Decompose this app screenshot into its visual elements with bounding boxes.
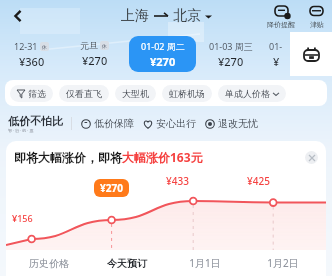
staticText: ¥425 xyxy=(247,174,270,188)
button[interactable]: 01-03 周三 xyxy=(199,40,262,69)
button[interactable]: Close xyxy=(305,151,318,164)
button[interactable]: 上海 xyxy=(121,7,212,25)
staticText: 休 xyxy=(102,43,107,49)
staticText: 退改无忧 xyxy=(218,117,258,130)
button[interactable]: 01- xyxy=(262,40,290,69)
staticText: 上海 xyxy=(121,7,149,25)
staticText: 仅看直飞 xyxy=(66,88,102,99)
button[interactable]: 降价提醒 xyxy=(265,4,297,29)
button[interactable]: 元旦 xyxy=(63,40,126,68)
button[interactable]: 12-31 xyxy=(0,40,63,69)
button[interactable]: Back xyxy=(4,2,32,30)
staticText: 01-03 周三 xyxy=(209,40,253,52)
staticText: 低价不怕比 xyxy=(8,114,63,128)
button[interactable]: Calendar xyxy=(290,32,332,76)
staticText: ¥156 xyxy=(12,212,33,224)
staticText: 北京 xyxy=(173,7,201,25)
staticText: 大幅涨价163元 xyxy=(122,149,203,165)
staticText: ¥270 xyxy=(218,54,244,69)
staticText: 历史价格 xyxy=(10,257,88,270)
button[interactable]: ¥270 xyxy=(94,179,129,197)
staticText: 今天预订 xyxy=(88,257,166,270)
button[interactable]: 筛选 xyxy=(10,85,53,102)
button[interactable]: 低价保障 xyxy=(81,117,134,130)
button[interactable]: 01-02 周二 xyxy=(129,36,196,72)
staticText: ¥270 xyxy=(150,54,176,69)
button[interactable]: 大型机 xyxy=(115,85,156,102)
staticText: 元旦 xyxy=(80,40,98,51)
staticText: 1月2日 xyxy=(244,256,322,270)
staticText: 01-02 周二 xyxy=(141,40,185,52)
staticText: 津贴 xyxy=(310,20,324,29)
staticText: 虹桥机场 xyxy=(169,88,205,99)
staticText: 单成人价格 xyxy=(225,88,270,99)
staticText: 安心出行 xyxy=(156,117,196,130)
staticText: 降价提醒 xyxy=(267,20,295,29)
staticText: 大型机 xyxy=(122,88,149,99)
button[interactable]: 单成人价格 xyxy=(218,85,286,102)
staticText: ¥270 xyxy=(82,53,108,68)
staticText: ¥ xyxy=(273,54,280,69)
button[interactable]: 退改无忧 xyxy=(205,117,258,130)
staticText: ¥360 xyxy=(19,54,45,69)
button[interactable]: 虹桥机场 xyxy=(162,85,212,102)
staticText: ¥433 xyxy=(166,174,189,188)
staticText: 12-31 xyxy=(14,40,38,52)
staticText: 01- xyxy=(269,40,283,52)
staticText: ¥270 xyxy=(100,181,123,195)
button[interactable]: 仅看直飞 xyxy=(59,85,109,102)
button[interactable]: 安心出行 xyxy=(143,117,196,130)
staticText: 1月1日 xyxy=(166,256,244,270)
staticText: 智 · 行 · 机 · 票 xyxy=(8,128,34,133)
button[interactable]: 津贴 xyxy=(307,4,326,29)
staticText: 即将大幅涨价，即将 xyxy=(14,150,122,165)
staticText: 筛选 xyxy=(28,88,46,99)
staticText: 低价保障 xyxy=(94,117,134,130)
staticText: 休 xyxy=(42,44,47,50)
